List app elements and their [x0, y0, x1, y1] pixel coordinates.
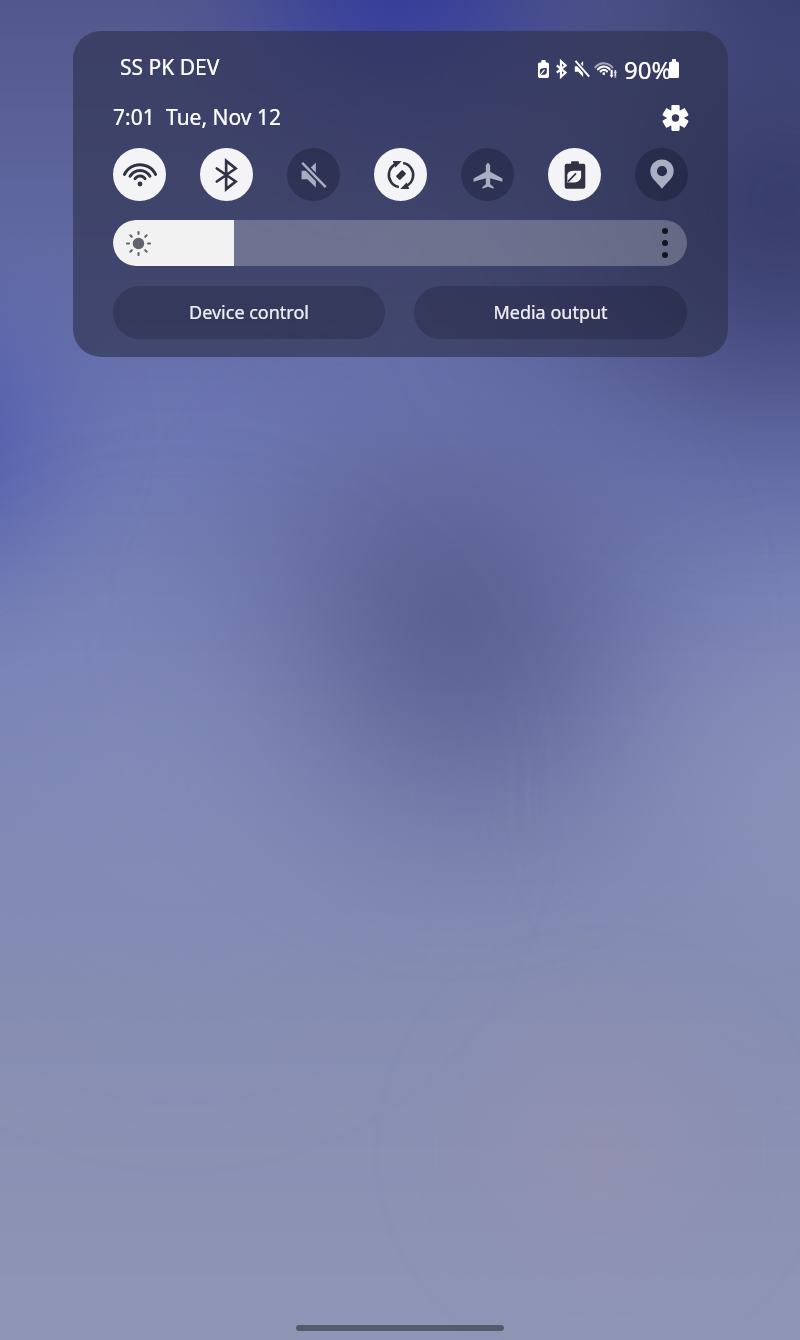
staticText: 7:01: [113, 103, 155, 132]
button[interactable]: Battery saver: [548, 148, 601, 201]
staticText: Tue, Nov 12: [166, 103, 281, 132]
button[interactable]: Brightness: [113, 220, 687, 266]
button[interactable]: Auto rotate: [374, 148, 427, 201]
staticText: Media output: [493, 300, 608, 325]
button[interactable]: Media output: [414, 286, 687, 339]
button[interactable]: Mute: [287, 148, 340, 201]
button[interactable]: Location: [635, 148, 688, 201]
staticText: Device control: [189, 300, 309, 325]
button[interactable]: Device control: [113, 286, 385, 339]
button[interactable]: Airplane mode: [461, 148, 514, 201]
staticText: 90%: [624, 53, 672, 86]
button[interactable]: Bluetooth: [200, 148, 253, 201]
staticText: SS PK DEV: [120, 53, 220, 82]
button[interactable]: Wi-Fi: [113, 148, 166, 201]
button[interactable]: Settings: [657, 100, 693, 136]
